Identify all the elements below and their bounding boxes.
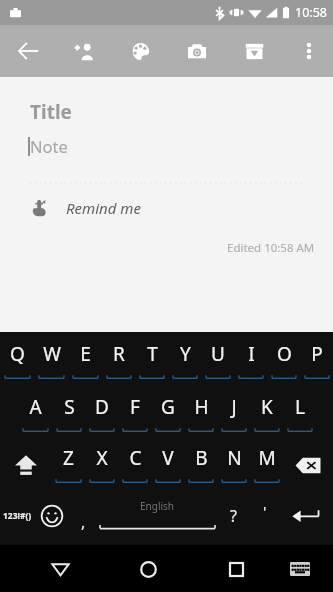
button[interactable]: U bbox=[201, 334, 234, 387]
staticText: H bbox=[194, 394, 209, 420]
button[interactable]: More options bbox=[289, 31, 329, 71]
button[interactable]: X bbox=[85, 440, 118, 490]
staticText: W bbox=[43, 341, 61, 367]
button[interactable]: V bbox=[151, 440, 184, 490]
button[interactable]: Change color bbox=[118, 29, 162, 73]
button[interactable]: Switch keyboard bbox=[280, 549, 320, 589]
button[interactable]: Y bbox=[168, 334, 201, 387]
button[interactable]: A bbox=[18, 387, 52, 440]
button[interactable]: F bbox=[118, 387, 151, 440]
button[interactable]: Emoji bbox=[35, 490, 68, 542]
button[interactable]: 123!#() bbox=[0, 490, 35, 542]
button[interactable]: P bbox=[300, 334, 333, 387]
staticText: N bbox=[227, 445, 242, 471]
button[interactable]: Remind me bbox=[30, 198, 141, 218]
button[interactable]: T bbox=[135, 334, 168, 387]
button[interactable]: , bbox=[68, 490, 98, 542]
staticText: R bbox=[113, 341, 125, 367]
staticText: , bbox=[81, 511, 86, 533]
button[interactable]: Archive bbox=[232, 29, 276, 73]
staticText: Z bbox=[63, 445, 74, 471]
staticText: Title bbox=[30, 99, 72, 125]
button[interactable]: D bbox=[85, 387, 118, 440]
button[interactable]: Enter bbox=[280, 490, 333, 542]
button[interactable]: Back bbox=[6, 29, 50, 73]
staticText: 123!#() bbox=[3, 510, 32, 522]
staticText: U bbox=[211, 341, 225, 367]
button[interactable]: Shift bbox=[0, 440, 51, 490]
staticText: X bbox=[96, 445, 108, 471]
staticText: D bbox=[95, 394, 109, 420]
button[interactable]: E bbox=[68, 334, 102, 387]
button[interactable]: J bbox=[217, 387, 250, 440]
button[interactable]: I bbox=[234, 334, 267, 387]
button[interactable]: G bbox=[151, 387, 184, 440]
button[interactable]: O bbox=[267, 334, 300, 387]
staticText: B bbox=[195, 445, 208, 471]
staticText: English bbox=[140, 499, 175, 513]
staticText: 10:58 bbox=[295, 4, 327, 21]
staticText: J bbox=[231, 394, 237, 420]
button[interactable]: L bbox=[283, 387, 316, 440]
staticText: E bbox=[80, 341, 91, 367]
button[interactable]: Recent apps bbox=[213, 546, 259, 592]
button[interactable]: W bbox=[34, 334, 68, 387]
staticText: T bbox=[147, 341, 158, 367]
button[interactable]: S bbox=[52, 387, 85, 440]
staticText: G bbox=[161, 394, 175, 420]
staticText: P bbox=[311, 341, 323, 367]
staticText: I bbox=[248, 341, 255, 367]
button[interactable]: Backspace bbox=[283, 440, 333, 490]
button[interactable]: K bbox=[250, 387, 283, 440]
staticText: M bbox=[258, 445, 276, 471]
staticText: S bbox=[64, 394, 75, 420]
button[interactable]: Add collaborator bbox=[62, 29, 106, 73]
staticText: A bbox=[29, 394, 42, 420]
staticText: Edited 10:58 AM bbox=[227, 240, 315, 256]
button[interactable]: M bbox=[250, 440, 283, 490]
button[interactable]: C bbox=[118, 440, 151, 490]
button[interactable]: ' bbox=[250, 490, 280, 542]
button[interactable]: English bbox=[98, 490, 217, 542]
button[interactable]: Add image bbox=[175, 29, 219, 73]
staticText: ? bbox=[230, 505, 237, 527]
staticText: Y bbox=[180, 341, 191, 367]
button[interactable]: R bbox=[102, 334, 135, 387]
staticText: O bbox=[277, 341, 292, 367]
staticText: L bbox=[295, 394, 305, 420]
staticText: Note bbox=[30, 135, 68, 157]
button[interactable]: B bbox=[184, 440, 217, 490]
staticText: Remind me bbox=[66, 198, 141, 218]
button[interactable]: H bbox=[184, 387, 217, 440]
button[interactable]: N bbox=[217, 440, 250, 490]
staticText: C bbox=[129, 445, 142, 471]
button[interactable]: Q bbox=[0, 334, 34, 387]
button[interactable]: ? bbox=[217, 490, 250, 542]
staticText: Q bbox=[10, 341, 25, 367]
button[interactable]: Home bbox=[125, 546, 171, 592]
staticText: F bbox=[130, 394, 140, 420]
staticText: K bbox=[261, 394, 273, 420]
button[interactable]: Back bbox=[37, 546, 83, 592]
staticText: ' bbox=[263, 501, 267, 521]
button[interactable]: Z bbox=[51, 440, 85, 490]
staticText: V bbox=[162, 445, 174, 471]
